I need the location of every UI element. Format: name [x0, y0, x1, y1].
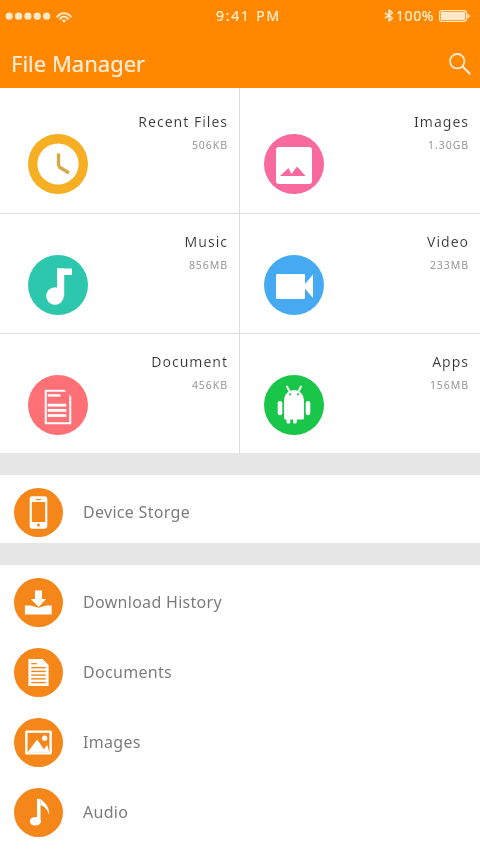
staticText: File Manager — [11, 48, 146, 78]
button[interactable]: Images — [0, 705, 480, 775]
staticText: Document — [151, 352, 228, 371]
staticText: Apps — [432, 352, 469, 371]
staticText: 506KB — [191, 138, 228, 152]
staticText: 856MB — [188, 258, 228, 272]
staticText: 156MB — [429, 378, 469, 392]
staticText: 100% — [396, 6, 435, 25]
staticText: Audio — [83, 801, 129, 823]
button[interactable]: Documents — [0, 635, 480, 705]
button[interactable]: Audio — [0, 775, 480, 845]
staticText: 233MB — [429, 258, 469, 272]
button[interactable]: Search — [432, 36, 480, 84]
button[interactable]: Document — [0, 334, 239, 453]
staticText: 1.30GB — [427, 138, 469, 152]
staticText: Images — [414, 112, 469, 131]
staticText: 9:41 PM — [216, 6, 281, 25]
staticText: Images — [83, 731, 141, 753]
staticText: Recent Files — [138, 112, 228, 131]
staticText: Device Storge — [83, 501, 190, 523]
button[interactable]: Images — [240, 88, 480, 213]
staticText: Documents — [83, 661, 172, 683]
button[interactable]: Download History — [0, 565, 480, 635]
button[interactable]: Video — [240, 214, 480, 333]
button[interactable]: Apps — [240, 334, 480, 453]
button[interactable]: Device Storge — [0, 475, 480, 543]
staticText: Download History — [83, 591, 222, 613]
staticText: 456KB — [191, 378, 228, 392]
staticText: Video — [427, 232, 469, 251]
staticText: Music — [184, 232, 228, 251]
button[interactable]: Music — [0, 214, 239, 333]
button[interactable]: Recent Files — [0, 88, 239, 213]
